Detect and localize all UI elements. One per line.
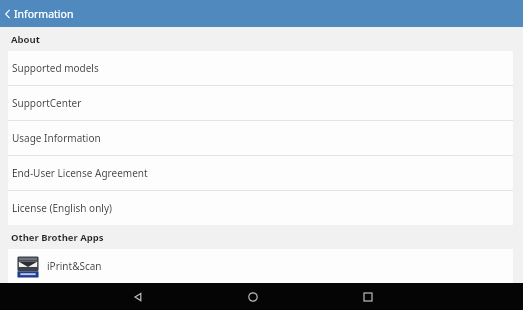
- button[interactable]: License (English only): [8, 191, 513, 225]
- staticText: Usage Information: [12, 131, 101, 145]
- staticText: About: [11, 33, 40, 46]
- staticText: License (English only): [12, 201, 112, 215]
- button[interactable]: iPrint&Scan: [8, 249, 513, 283]
- button[interactable]: Recent apps: [357, 286, 379, 308]
- staticText: SupportCenter: [12, 96, 82, 110]
- staticText: End-User License Agreement: [12, 166, 148, 180]
- button[interactable]: Supported models: [8, 51, 513, 85]
- button[interactable]: Back: [127, 286, 149, 308]
- staticText: Other Brother Apps: [11, 231, 104, 244]
- button[interactable]: Usage Information: [8, 121, 513, 155]
- staticText: iPrint&Scan: [47, 259, 102, 273]
- button[interactable]: SupportCenter: [8, 86, 513, 120]
- staticText: Supported models: [12, 61, 99, 75]
- button[interactable]: End-User License Agreement: [8, 156, 513, 190]
- button[interactable]: Information: [0, 0, 82, 27]
- button[interactable]: Home: [242, 286, 264, 308]
- staticText: Information: [14, 7, 74, 21]
